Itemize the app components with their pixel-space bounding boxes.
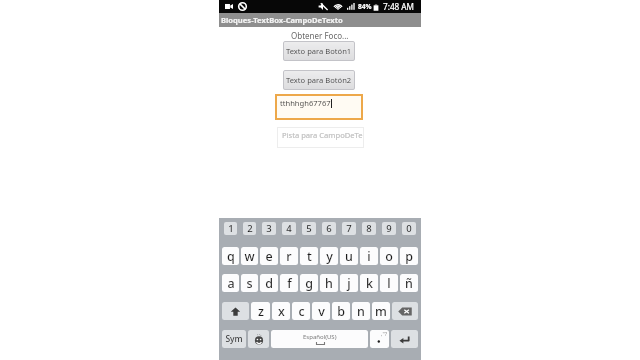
- staticText: 3: [266, 222, 272, 235]
- button[interactable]: y: [320, 247, 338, 265]
- staticText: 7: [346, 222, 352, 235]
- button[interactable]: Enter: [391, 330, 418, 348]
- staticText: tthhhgh67767: [280, 98, 331, 108]
- button[interactable]: Texto para Botón2: [283, 70, 355, 90]
- staticText: i: [367, 248, 371, 265]
- button[interactable]: Español(US): [271, 330, 368, 348]
- button[interactable]: ñ: [400, 274, 418, 292]
- button[interactable]: p: [400, 247, 418, 265]
- staticText: r: [286, 248, 292, 265]
- button[interactable]: t: [300, 247, 318, 265]
- staticText: 84%: [358, 2, 372, 11]
- staticText: Pista para CampoDeTe: [282, 130, 363, 140]
- staticText: 2: [247, 222, 253, 235]
- staticText: d: [265, 275, 273, 292]
- button[interactable]: Backspace: [392, 302, 418, 320]
- staticText: 9: [386, 222, 392, 235]
- button[interactable]: 3: [262, 222, 276, 235]
- staticText: h: [325, 275, 333, 292]
- button[interactable]: e: [260, 247, 278, 265]
- button[interactable]: x: [272, 302, 290, 320]
- staticText: b: [337, 303, 345, 320]
- staticText: 0: [406, 222, 412, 235]
- staticText: u: [345, 248, 353, 265]
- staticText: e: [265, 248, 273, 265]
- button[interactable]: h: [320, 274, 338, 292]
- button[interactable]: 6: [322, 222, 336, 235]
- button[interactable]: n: [352, 302, 370, 320]
- button[interactable]: c: [292, 302, 310, 320]
- staticText: m: [375, 303, 387, 320]
- staticText: Obtener Foco...: [291, 30, 349, 41]
- staticText: g: [305, 275, 313, 292]
- button[interactable]: Texto para Botón1: [283, 41, 355, 61]
- button[interactable]: 1: [224, 222, 237, 235]
- button[interactable]: i: [360, 247, 378, 265]
- staticText: Texto para Botón1: [286, 46, 352, 56]
- button[interactable]: 5: [302, 222, 316, 235]
- staticText: w: [244, 248, 255, 265]
- button[interactable]: g: [300, 274, 318, 292]
- staticText: 7:48 AM: [383, 1, 415, 12]
- staticText: 1: [228, 222, 234, 235]
- button[interactable]: k: [360, 274, 378, 292]
- staticText: ñ: [405, 275, 413, 292]
- staticText: 4: [286, 222, 292, 235]
- button[interactable]: ,"?: [370, 330, 389, 348]
- button[interactable]: 8: [362, 222, 376, 235]
- staticText: o: [385, 248, 393, 265]
- staticText: 8: [366, 222, 372, 235]
- button[interactable]: v: [312, 302, 330, 320]
- button[interactable]: w: [241, 247, 258, 265]
- staticText: s: [246, 275, 253, 292]
- button[interactable]: a: [222, 274, 239, 292]
- staticText: y: [326, 248, 333, 265]
- staticText: 5: [306, 222, 312, 235]
- button[interactable]: u: [340, 247, 358, 265]
- staticText: x: [278, 303, 285, 320]
- button[interactable]: l: [380, 274, 398, 292]
- staticText: ,"?: [381, 330, 388, 337]
- button[interactable]: b: [332, 302, 350, 320]
- staticText: a: [227, 275, 235, 292]
- staticText: c: [298, 303, 305, 320]
- button[interactable]: Shift: [222, 302, 249, 320]
- button[interactable]: Pista para CampoDeTe: [277, 127, 364, 148]
- button[interactable]: Sym: [222, 330, 246, 348]
- button[interactable]: 7: [342, 222, 356, 235]
- button[interactable]: 0: [402, 222, 416, 235]
- button[interactable]: Emoji: [248, 330, 269, 348]
- staticText: j: [347, 275, 351, 292]
- staticText: Texto para Botón2: [286, 75, 352, 85]
- staticText: z: [258, 303, 264, 320]
- staticText: Bloques-TextBox-CampoDeTexto: [221, 15, 343, 25]
- button[interactable]: 4: [282, 222, 296, 235]
- button[interactable]: d: [260, 274, 278, 292]
- staticText: k: [366, 275, 373, 292]
- button[interactable]: f: [280, 274, 298, 292]
- button[interactable]: 9: [382, 222, 396, 235]
- staticText: Sym: [225, 333, 243, 345]
- staticText: t: [307, 248, 312, 265]
- button[interactable]: q: [222, 247, 239, 265]
- button[interactable]: m: [372, 302, 390, 320]
- staticText: l: [387, 275, 391, 292]
- staticText: Español(US): [303, 333, 337, 341]
- button[interactable]: j: [340, 274, 358, 292]
- staticText: 6: [326, 222, 332, 235]
- staticText: q: [227, 248, 235, 265]
- button[interactable]: z: [251, 302, 270, 320]
- button[interactable]: tthhhgh67767: [275, 94, 363, 120]
- button[interactable]: r: [280, 247, 298, 265]
- button[interactable]: o: [380, 247, 398, 265]
- staticText: v: [318, 303, 325, 320]
- button[interactable]: s: [241, 274, 258, 292]
- staticText: n: [357, 303, 365, 320]
- staticText: p: [405, 248, 413, 265]
- staticText: f: [287, 275, 292, 292]
- button[interactable]: 2: [243, 222, 256, 235]
